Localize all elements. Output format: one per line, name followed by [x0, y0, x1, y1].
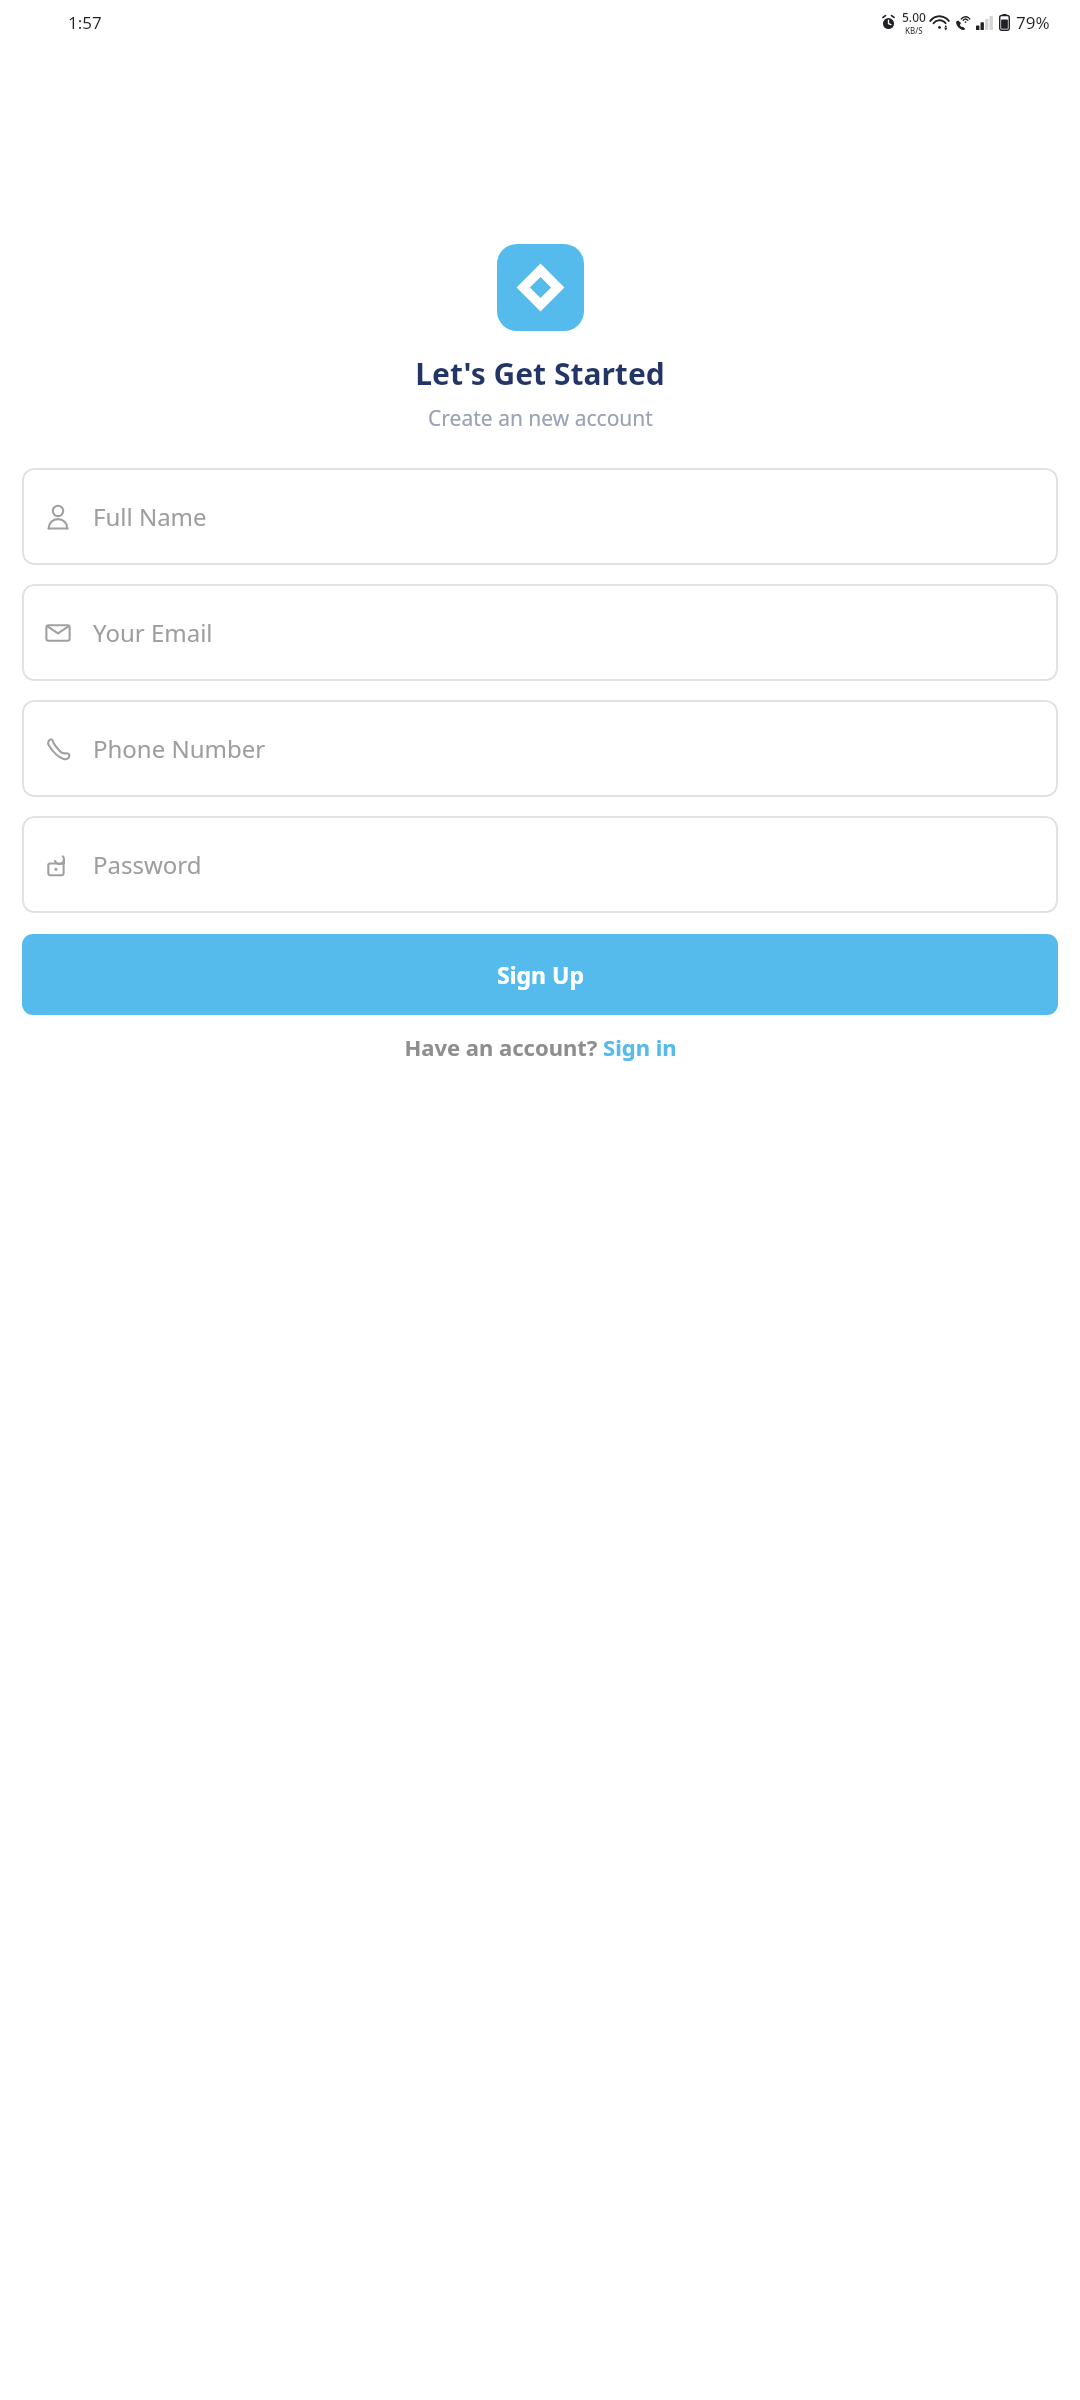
staticText: 5.00: [902, 9, 926, 25]
button[interactable]: Full Name: [22, 468, 1058, 565]
staticText: Create an new account: [428, 404, 653, 433]
staticText: Password: [93, 848, 202, 881]
staticText: Let's Get Started: [415, 353, 665, 394]
button[interactable]: Password: [22, 816, 1058, 913]
staticText: 79%: [1016, 11, 1050, 34]
staticText: KB/S: [905, 25, 923, 36]
staticText: Full Name: [93, 500, 207, 533]
staticText: Have an account? Sign in: [404, 1032, 677, 1062]
button[interactable]: Have an account? Sign in: [22, 1032, 1058, 1062]
staticText: Your Email: [93, 616, 213, 649]
staticText: Phone Number: [93, 732, 266, 765]
button[interactable]: Sign Up: [22, 934, 1058, 1015]
staticText: Sign Up: [497, 959, 584, 990]
button[interactable]: Your Email: [22, 584, 1058, 681]
button[interactable]: Phone Number: [22, 700, 1058, 797]
staticText: 1:57: [68, 11, 102, 34]
